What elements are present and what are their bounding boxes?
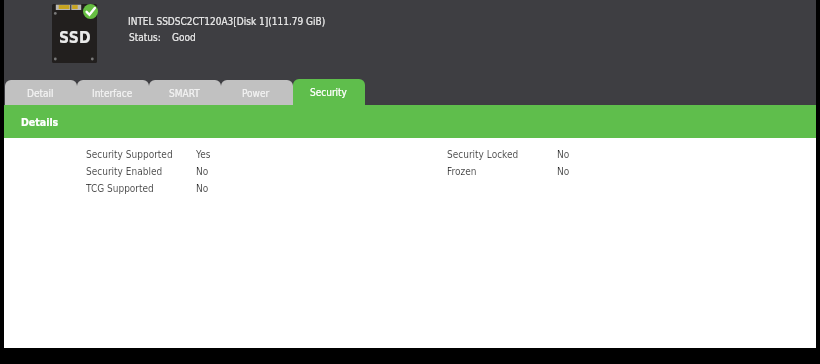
- staticText: Details: [21, 116, 59, 128]
- staticText: No: [557, 149, 570, 161]
- staticText: Interface: [92, 88, 133, 100]
- staticText: Security: [310, 87, 347, 99]
- staticText: SSD: [59, 29, 91, 47]
- staticText: Security Supported: [86, 149, 173, 161]
- staticText: Yes: [196, 149, 211, 161]
- staticText: Security Enabled: [86, 166, 163, 178]
- button[interactable]: SMART: [149, 80, 221, 105]
- staticText: SMART: [169, 88, 200, 100]
- staticText: No: [196, 183, 209, 195]
- button[interactable]: Detail: [5, 80, 77, 105]
- staticText: Status:: [129, 32, 161, 44]
- staticText: Frozen: [447, 166, 477, 178]
- staticText: Security Locked: [447, 149, 519, 161]
- staticText: Good: [172, 32, 196, 44]
- staticText: INTEL SSDSC2CT120A3[Disk 1](111.79 GiB): [128, 16, 326, 28]
- button[interactable]: Power: [221, 80, 293, 105]
- staticText: Power: [242, 88, 270, 100]
- button[interactable]: Security: [293, 79, 365, 105]
- staticText: No: [196, 166, 209, 178]
- staticText: TCG Supported: [86, 183, 154, 195]
- staticText: No: [557, 166, 570, 178]
- button[interactable]: Interface: [77, 80, 149, 105]
- staticText: Detail: [27, 88, 54, 100]
- button[interactable]: SSD drive, status Good: [52, 4, 102, 64]
